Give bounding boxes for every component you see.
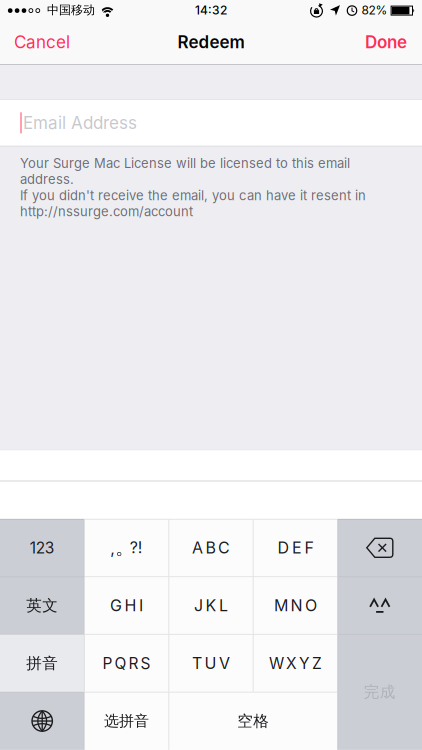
button[interactable]: TUV [169,634,253,692]
button[interactable]: 123 [0,519,84,577]
button[interactable]: GHI [84,577,169,634]
staticText: Your Surge Mac License will be licensed … [20,155,366,219]
staticText: WXYZ [269,654,322,672]
button[interactable]: Emoticons [338,577,422,634]
button[interactable]: Cancel [14,32,70,52]
staticText: ABC [192,538,230,557]
button[interactable]: PQRS [84,634,169,692]
staticText: Done [365,32,407,52]
button[interactable]: 拼音 [0,634,84,692]
button[interactable]: 空格 [169,692,338,750]
button[interactable]: 选拼音 [84,692,169,750]
button[interactable]: Email Address [0,100,422,146]
staticText: Email Address [23,113,137,133]
button[interactable]: Done [365,32,407,52]
staticText: 完成 [364,683,396,702]
button[interactable]: Next keyboard [0,692,84,750]
staticText: ?! [130,538,143,557]
staticText: TUV [192,654,230,673]
staticText: Cancel [14,32,70,52]
staticText: Redeem [177,32,244,52]
staticText: GHI [110,596,143,615]
staticText: 82% [361,3,387,17]
button[interactable]: ABC [169,519,253,577]
staticText: 14:32 [195,3,227,17]
staticText: 选拼音 [104,712,149,730]
staticText: JKL [194,596,228,615]
staticText: MNO [274,596,317,615]
button[interactable]: JKL [169,577,253,634]
button[interactable]: WXYZ [253,634,338,692]
staticText: 中国移动 [47,3,95,17]
button[interactable]: MNO [253,577,338,634]
button[interactable]: DEF [253,519,338,577]
staticText: 拼音 [26,654,58,673]
button[interactable]: Delete [338,519,422,577]
staticText: ,。 [110,536,134,559]
staticText: PQRS [103,654,151,672]
staticText: 英文 [26,596,58,615]
staticText: DEF [277,538,313,557]
button[interactable]: 英文 [0,577,84,634]
button[interactable]: ,。 [84,519,169,577]
staticText: 空格 [237,711,269,730]
staticText: 123 [30,539,55,557]
